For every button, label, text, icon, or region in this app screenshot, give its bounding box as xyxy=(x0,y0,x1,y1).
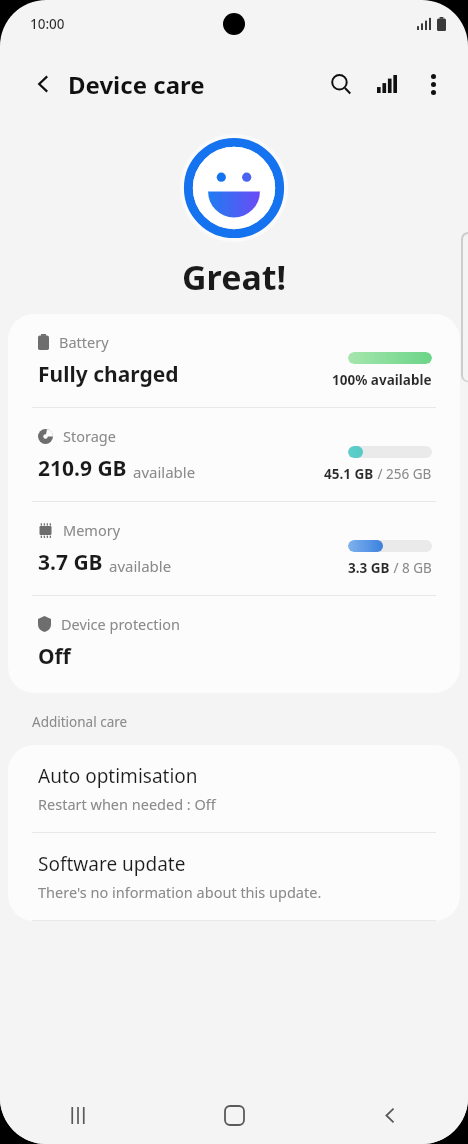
staticText: Great! xyxy=(182,254,287,300)
staticText: Battery xyxy=(59,332,109,352)
staticText: Auto optimisation xyxy=(38,763,198,789)
button[interactable]: Search xyxy=(318,61,364,107)
staticText: available xyxy=(133,462,196,482)
staticText: 3.3 GB xyxy=(348,559,390,577)
button[interactable]: Recents xyxy=(46,1086,110,1144)
staticText: 45.1 GB xyxy=(324,465,374,483)
staticText: Fully charged xyxy=(38,360,179,389)
button[interactable]: Auto optimisation xyxy=(8,745,460,832)
button[interactable]: Battery xyxy=(8,314,460,407)
button[interactable]: Back xyxy=(358,1086,422,1144)
button[interactable]: Home xyxy=(202,1086,266,1144)
staticText: There's no information about this update… xyxy=(38,882,322,902)
staticText: 3.7 GB xyxy=(38,548,103,577)
staticText: available xyxy=(109,556,172,576)
staticText: 210.9 GB xyxy=(38,454,127,483)
staticText: Restart when needed : Off xyxy=(38,794,216,814)
staticText: Off xyxy=(38,642,71,671)
staticText: Device care xyxy=(68,68,205,101)
staticText: 10:00 xyxy=(30,15,65,33)
button[interactable]: Usage statistics xyxy=(364,61,410,107)
staticText: Memory xyxy=(63,520,121,540)
staticText: Additional care xyxy=(32,713,128,731)
button[interactable]: Device protection xyxy=(8,596,460,693)
staticText: / 256 GB xyxy=(374,465,432,483)
button[interactable]: Storage xyxy=(8,408,460,501)
button[interactable]: Memory xyxy=(8,502,460,595)
button[interactable]: Back xyxy=(22,62,66,106)
staticText: Storage xyxy=(63,426,116,446)
staticText: Software update xyxy=(38,851,186,877)
staticText: Device protection xyxy=(61,614,180,634)
staticText: 100% available xyxy=(332,371,432,389)
button[interactable]: Software update xyxy=(8,833,460,920)
staticText: / 8 GB xyxy=(390,559,432,577)
button[interactable]: More options xyxy=(410,61,456,107)
